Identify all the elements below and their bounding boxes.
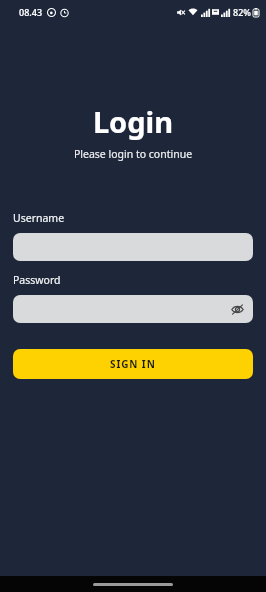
staticText: Login xyxy=(0,102,266,141)
staticText: Username xyxy=(13,211,65,225)
button[interactable]: Show password xyxy=(227,299,247,319)
button[interactable]: Show password xyxy=(13,295,253,323)
staticText: 82% xyxy=(233,6,251,18)
staticText: 08.43 xyxy=(19,6,43,18)
button[interactable]: SIGN IN xyxy=(13,349,253,379)
staticText: Password xyxy=(13,273,61,287)
staticText: SIGN IN xyxy=(110,357,156,371)
staticText: Please login to continue xyxy=(0,147,266,161)
button[interactable] xyxy=(13,233,253,261)
